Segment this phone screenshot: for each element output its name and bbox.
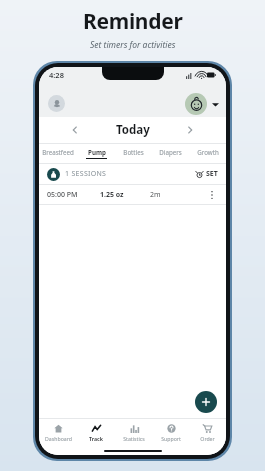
staticText: Pump <box>88 148 106 156</box>
staticText: Growth <box>197 148 219 156</box>
staticText: Support <box>161 435 181 442</box>
button[interactable]: Switch profile <box>210 99 220 109</box>
button[interactable]: Order <box>189 419 226 446</box>
button[interactable]: Baby profile <box>185 93 207 115</box>
staticText: 1 SESSIONS <box>65 169 107 179</box>
button[interactable]: Profile <box>48 95 65 112</box>
staticText: Breastfeed <box>42 148 74 156</box>
staticText: Statistics <box>123 435 145 442</box>
button[interactable]: Next day <box>182 122 198 138</box>
button[interactable]: Pump <box>77 144 115 163</box>
button[interactable]: Diapers <box>152 144 189 163</box>
staticText: Order <box>200 435 215 442</box>
button[interactable]: Add entry <box>195 391 217 413</box>
button[interactable]: Support <box>152 419 189 446</box>
staticText: Diapers <box>159 148 182 156</box>
button[interactable]: Breastfeed <box>39 144 77 163</box>
staticText: Track <box>89 435 103 442</box>
staticText: 4:28 <box>49 70 64 80</box>
staticText: SET <box>206 169 218 179</box>
staticText: Today <box>116 122 150 138</box>
button[interactable]: Bottles <box>115 144 152 163</box>
button[interactable]: Statistics <box>115 419 152 446</box>
staticText: Reminder <box>83 7 183 36</box>
button[interactable]: More options <box>206 189 218 201</box>
staticText: 1.25 oz <box>100 190 124 200</box>
staticText: 05:00 PM <box>47 190 78 200</box>
button[interactable]: Growth <box>189 144 226 163</box>
staticText: Dashboard <box>45 435 72 442</box>
button[interactable]: 05:00 PM <box>47 185 218 204</box>
button[interactable]: 1 SESSIONS <box>47 164 218 184</box>
button[interactable]: Dashboard <box>39 419 77 446</box>
staticText: Set timers for activities <box>90 39 176 51</box>
button[interactable]: Track <box>77 419 115 446</box>
button[interactable]: Previous day <box>67 122 83 138</box>
staticText: Bottles <box>123 148 144 156</box>
staticText: 2m <box>150 190 161 200</box>
